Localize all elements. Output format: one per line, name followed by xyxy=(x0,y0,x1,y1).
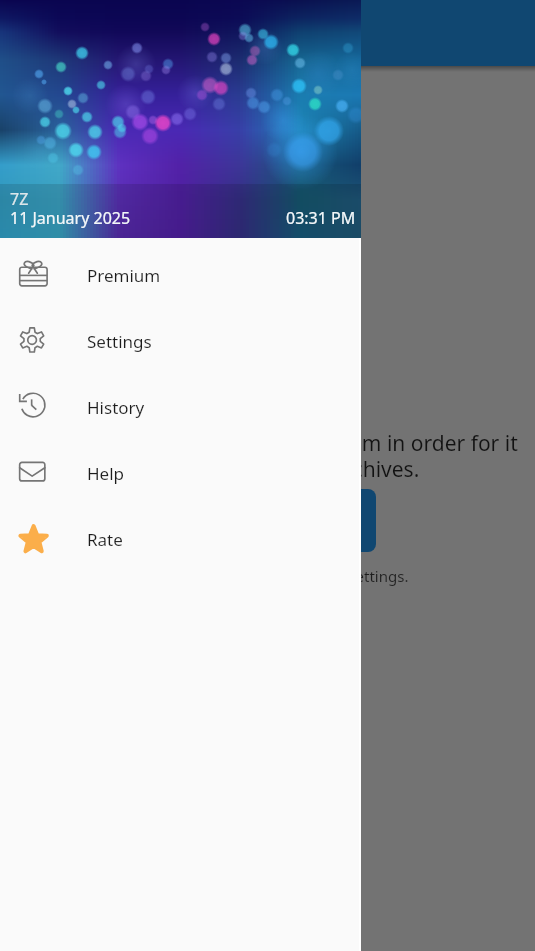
staticText: Please allow access to the file system i… xyxy=(17,429,518,484)
staticText: 03:31 PM xyxy=(286,207,356,229)
staticText: Settings xyxy=(87,330,152,353)
staticText: 7Z xyxy=(10,188,29,210)
button[interactable]: Premium xyxy=(0,242,361,308)
button[interactable]: Help xyxy=(0,440,361,506)
other: Rate xyxy=(18,524,48,554)
button[interactable]: Rate xyxy=(0,506,361,572)
staticText: History xyxy=(87,396,145,419)
other: Settings xyxy=(18,326,48,356)
staticText: Help xyxy=(87,462,125,485)
button[interactable]: GRANT PERMISSION xyxy=(159,489,376,552)
other: Premium xyxy=(18,260,48,290)
other: Help xyxy=(18,458,48,488)
staticText: You can also grant it in the app setting… xyxy=(127,566,409,586)
staticText: Rate xyxy=(87,528,123,551)
staticText: Premium xyxy=(87,264,161,287)
staticText: 11 January 2025 xyxy=(10,207,131,229)
other: History xyxy=(18,392,48,422)
button[interactable]: Settings xyxy=(0,308,361,374)
button[interactable]: History xyxy=(0,374,361,440)
